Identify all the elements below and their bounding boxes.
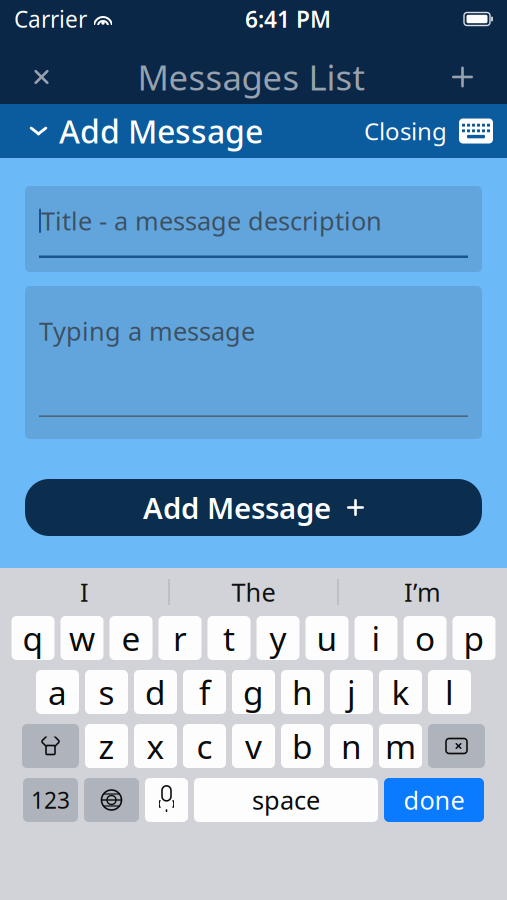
staticText: Carrier (14, 4, 87, 34)
button[interactable]: o (403, 616, 446, 660)
button[interactable]: Close keyboard (364, 107, 507, 155)
button[interactable]: q (11, 616, 54, 660)
button[interactable]: v (232, 724, 275, 768)
staticText: Add Message (143, 488, 331, 527)
staticText: space (252, 783, 320, 817)
staticText: u (316, 616, 337, 660)
button[interactable]: k (379, 670, 422, 714)
button[interactable]: w (60, 616, 103, 660)
staticText: Add Message (59, 110, 263, 152)
staticText: 123 (31, 785, 70, 815)
staticText: Typing a message (39, 314, 255, 348)
staticText: Closing (364, 115, 447, 147)
staticText: a (48, 670, 67, 714)
staticText: h (292, 670, 313, 714)
button[interactable]: m (379, 724, 422, 768)
staticText: w (69, 616, 95, 660)
staticText: z (98, 724, 114, 768)
staticText: x (146, 724, 164, 768)
button[interactable]: Close (0, 61, 51, 92)
button[interactable]: space (194, 778, 378, 822)
staticText: l (445, 670, 454, 714)
button[interactable]: c (183, 724, 226, 768)
staticText: s (98, 670, 114, 714)
button[interactable]: done (384, 778, 484, 822)
staticText: j (347, 670, 356, 714)
button[interactable]: p (452, 616, 495, 660)
staticText: The (231, 575, 275, 609)
staticText: d (145, 670, 166, 714)
staticText: y (269, 616, 286, 660)
staticText: c (196, 724, 212, 768)
staticText: r (173, 616, 187, 660)
staticText: b (292, 724, 313, 768)
staticText: v (245, 724, 262, 768)
button[interactable]: e (109, 616, 152, 660)
button[interactable]: I (0, 568, 168, 616)
button[interactable]: j (330, 670, 373, 714)
button[interactable]: l (428, 670, 471, 714)
button[interactable]: n (330, 724, 373, 768)
staticText: f (199, 670, 210, 714)
button[interactable]: u (305, 616, 348, 660)
button[interactable]: g (232, 670, 275, 714)
button[interactable]: Add Message (25, 479, 482, 536)
staticText: n (341, 724, 362, 768)
staticText: Title - a message description (41, 204, 382, 237)
staticText: 6:41 PM (245, 4, 331, 34)
button[interactable]: Add (452, 60, 507, 93)
button[interactable]: x (134, 724, 177, 768)
button[interactable]: i (354, 616, 397, 660)
staticText: done (403, 783, 464, 817)
staticText: e (121, 616, 140, 660)
staticText: I’m (404, 575, 441, 609)
button[interactable]: y (256, 616, 299, 660)
staticText: o (415, 616, 435, 660)
staticText: Messages List (137, 54, 365, 100)
button[interactable]: z (85, 724, 128, 768)
button[interactable]: f (183, 670, 226, 714)
button[interactable]: h (281, 670, 324, 714)
button[interactable]: The (169, 568, 337, 616)
button[interactable]: I’m (338, 568, 506, 616)
button[interactable]: Delete (428, 724, 485, 768)
button[interactable]: Shift (22, 724, 79, 768)
staticText: I (80, 575, 89, 609)
button[interactable]: r (158, 616, 201, 660)
button[interactable]: b (281, 724, 324, 768)
button[interactable]: Add Message (0, 100, 263, 162)
staticText: i (371, 616, 380, 660)
staticText: q (22, 616, 43, 660)
staticText: g (243, 670, 264, 714)
button[interactable]: Numbers (23, 778, 78, 822)
button[interactable]: Next keyboard (84, 778, 139, 822)
staticText: t (223, 616, 235, 660)
button[interactable]: t (207, 616, 250, 660)
button[interactable]: Dictation (145, 778, 188, 822)
button[interactable]: a (36, 670, 79, 714)
staticText: m (385, 724, 416, 768)
staticText: p (463, 616, 484, 660)
staticText: k (391, 670, 409, 714)
button[interactable]: s (85, 670, 128, 714)
button[interactable]: d (134, 670, 177, 714)
